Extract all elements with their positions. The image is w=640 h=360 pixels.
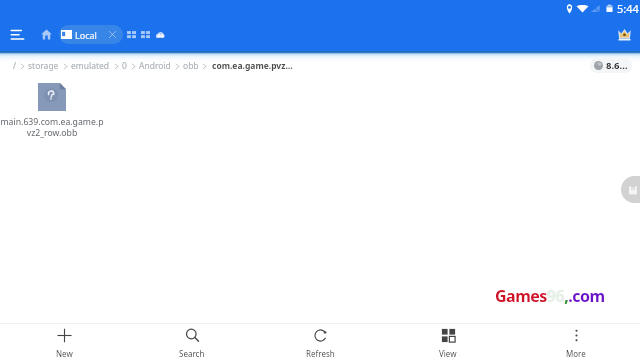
button[interactable]: Android bbox=[138, 60, 172, 72]
button[interactable]: More bbox=[512, 327, 640, 360]
button[interactable]: main.639.com.ea.game.p vz2_row.obb bbox=[0, 83, 104, 139]
staticText: More bbox=[566, 348, 586, 359]
staticText: 5:44 bbox=[617, 1, 639, 16]
button[interactable]: obb bbox=[182, 60, 200, 72]
button[interactable]: Refresh bbox=[256, 327, 384, 360]
staticText: Local bbox=[75, 29, 97, 41]
button[interactable]: Cloud drive bbox=[153, 28, 166, 41]
staticText: Refresh bbox=[306, 348, 335, 359]
staticText: emulated bbox=[71, 60, 110, 72]
staticText: Android bbox=[139, 60, 171, 72]
staticText: New bbox=[56, 348, 73, 359]
button[interactable]: 0 bbox=[121, 60, 128, 72]
button[interactable]: storage bbox=[27, 60, 60, 72]
staticText: View bbox=[439, 348, 457, 359]
button[interactable]: Tab 2 bbox=[125, 28, 137, 40]
button[interactable]: emulated bbox=[70, 60, 111, 72]
staticText: storage bbox=[28, 60, 59, 72]
staticText: Games96,.com bbox=[495, 285, 605, 307]
staticText: 8.6… bbox=[606, 59, 628, 72]
button[interactable]: Clipboard bbox=[621, 176, 640, 203]
button[interactable]: Tab 3 bbox=[139, 28, 151, 40]
staticText: 0 bbox=[122, 60, 127, 72]
button[interactable]: View bbox=[384, 327, 512, 360]
button[interactable]: Home bbox=[38, 26, 55, 43]
staticText: Search bbox=[179, 348, 205, 359]
staticText: com.ea.game.pvz… bbox=[212, 60, 293, 72]
staticText: obb bbox=[183, 60, 199, 72]
button[interactable]: Search bbox=[128, 327, 256, 360]
button[interactable]: 8.6… bbox=[590, 58, 632, 73]
staticText: main.639.com.ea.game.p vz2_row.obb bbox=[0, 116, 104, 139]
button[interactable]: Local bbox=[59, 25, 123, 44]
button[interactable]: Premium bbox=[614, 24, 634, 44]
button[interactable]: New bbox=[0, 327, 128, 360]
button[interactable]: Menu bbox=[5, 22, 29, 46]
staticText: / bbox=[13, 60, 17, 72]
